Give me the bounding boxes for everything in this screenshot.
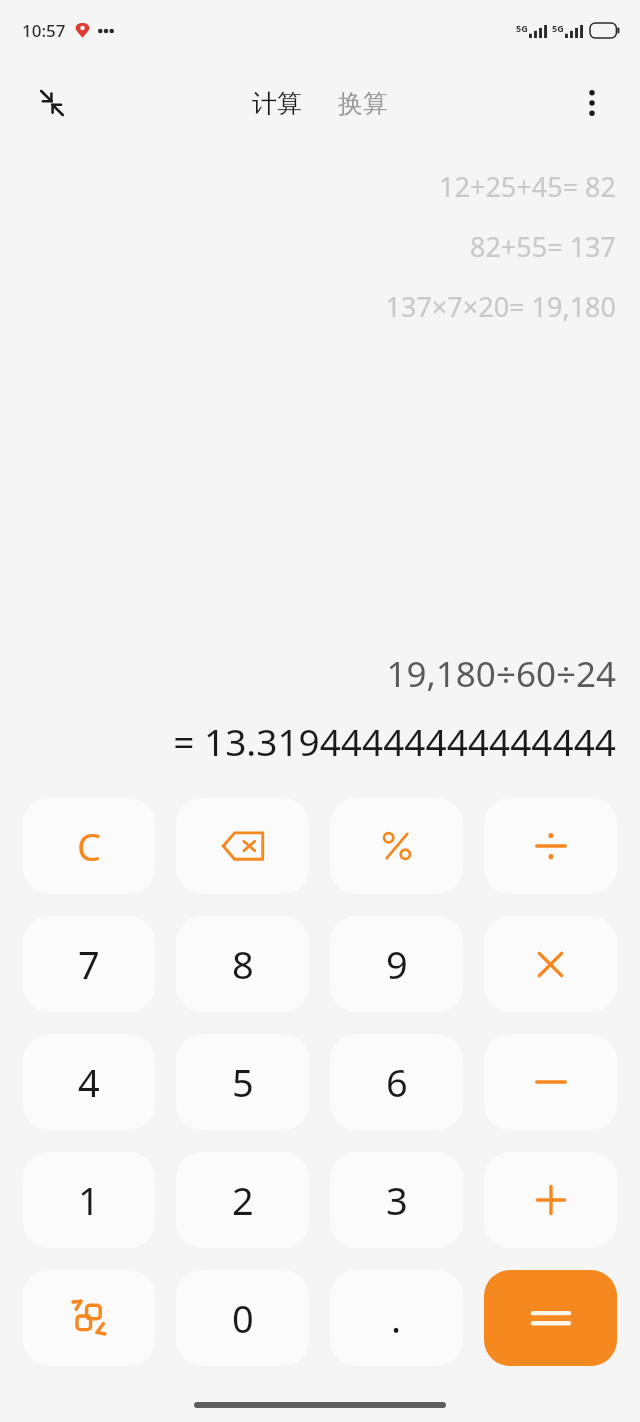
staticText: 12+25+45= 82 bbox=[439, 168, 616, 205]
button[interactable]: 4 bbox=[23, 1034, 155, 1130]
button[interactable] bbox=[484, 798, 617, 894]
button[interactable]: 计算 bbox=[244, 82, 310, 125]
staticText: 5 bbox=[232, 1056, 254, 1108]
staticText: 82+55= 137 bbox=[469, 228, 616, 265]
button[interactable]: Backspace bbox=[176, 798, 309, 894]
staticText: = 13.31944444444444444 bbox=[173, 716, 616, 766]
button[interactable]: 0 bbox=[176, 1270, 309, 1366]
button[interactable] bbox=[330, 798, 463, 894]
staticText: 3 bbox=[386, 1174, 408, 1226]
staticText: C bbox=[77, 820, 102, 872]
button[interactable]: 1 bbox=[23, 1152, 155, 1248]
staticText: 8 bbox=[232, 938, 254, 990]
staticText: 7 bbox=[78, 938, 100, 990]
button[interactable]: C bbox=[23, 798, 155, 894]
staticText: 19,180÷60÷24 bbox=[386, 650, 616, 698]
staticText: 9 bbox=[386, 938, 408, 990]
staticText: 计算 bbox=[252, 88, 302, 119]
button[interactable]: 2 bbox=[176, 1152, 309, 1248]
staticText: 10:57 bbox=[22, 19, 66, 42]
button[interactable]: More options bbox=[568, 79, 616, 127]
staticText: . bbox=[391, 1292, 402, 1344]
staticText: 4 bbox=[78, 1056, 100, 1108]
button[interactable]: . bbox=[330, 1270, 463, 1366]
button[interactable] bbox=[484, 1034, 617, 1130]
button[interactable] bbox=[484, 1152, 617, 1248]
button[interactable]: 5 bbox=[176, 1034, 309, 1130]
button[interactable]: 6 bbox=[330, 1034, 463, 1130]
staticText: 5G bbox=[516, 22, 528, 34]
staticText: 2 bbox=[232, 1174, 254, 1226]
button[interactable] bbox=[484, 916, 617, 1012]
staticText: 1 bbox=[78, 1174, 100, 1226]
button[interactable]: 7 bbox=[23, 916, 155, 1012]
button[interactable]: 8 bbox=[176, 916, 309, 1012]
staticText: 换算 bbox=[338, 88, 388, 119]
button[interactable]: 换算 bbox=[330, 82, 396, 125]
button[interactable]: Collapse bbox=[26, 77, 78, 129]
button[interactable]: 9 bbox=[330, 916, 463, 1012]
button[interactable]: Scientific mode bbox=[23, 1270, 155, 1366]
button[interactable]: 3 bbox=[330, 1152, 463, 1248]
staticText: 5G bbox=[552, 22, 564, 34]
staticText: 6 bbox=[386, 1056, 408, 1108]
staticText: 0 bbox=[232, 1292, 254, 1344]
button[interactable] bbox=[484, 1270, 617, 1366]
staticText: 137×7×20= 19,180 bbox=[385, 288, 616, 325]
